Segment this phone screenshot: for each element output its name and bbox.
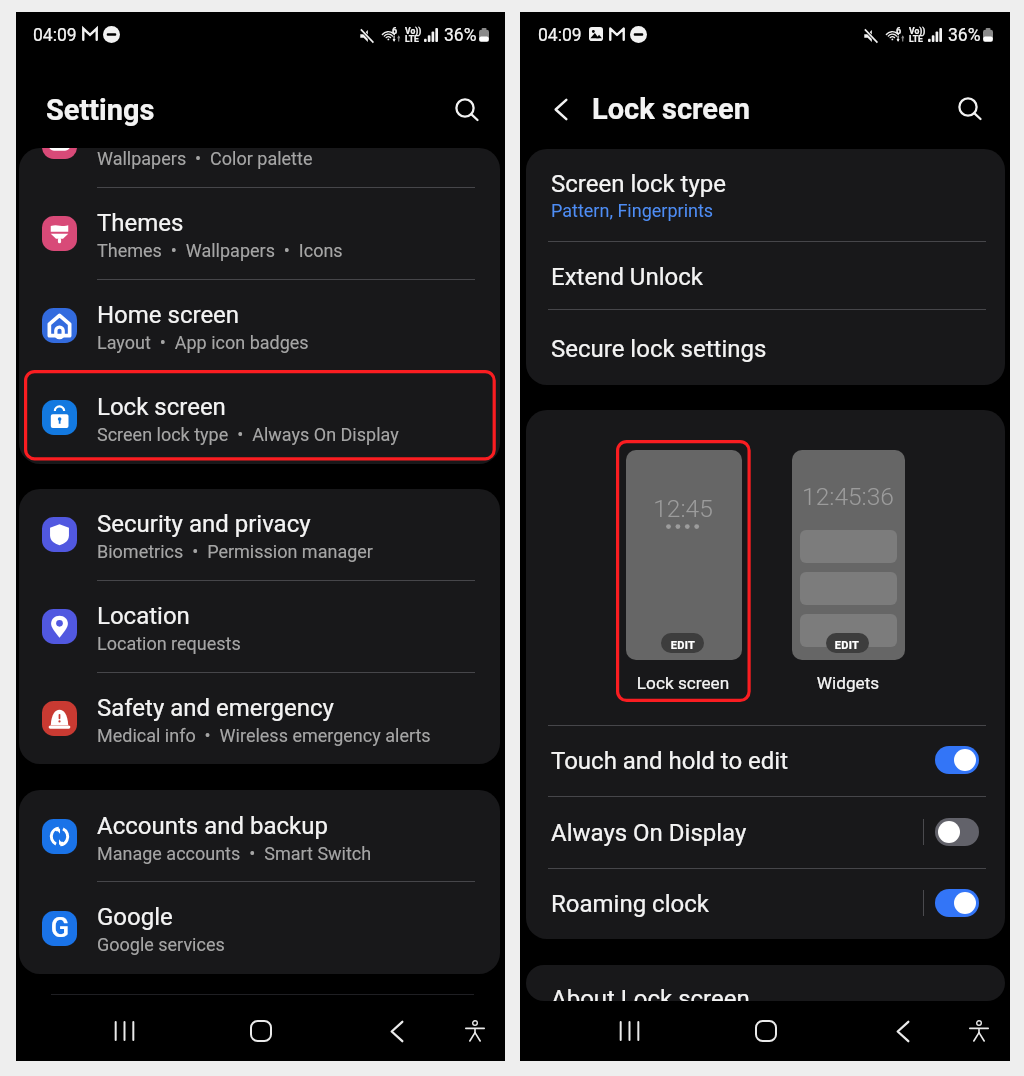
staticText: Medical info • Wireless emergency alerts	[97, 725, 431, 746]
staticText: 04:09	[538, 25, 582, 46]
staticText: 04:09	[33, 25, 77, 46]
staticText: 6	[392, 26, 398, 37]
staticText: Secure lock settings	[551, 335, 767, 363]
button[interactable]: Always On Display	[526, 797, 1005, 869]
button[interactable]: Lock screen preview	[626, 450, 742, 660]
button[interactable]: Lock screen	[19, 371, 500, 463]
button[interactable]: Accounts and backup	[19, 790, 500, 882]
staticText: Lock screen	[97, 393, 226, 421]
button[interactable]: Secure lock settings	[526, 310, 1005, 385]
staticText: EDIT	[817, 639, 877, 939]
staticText: Settings	[46, 93, 155, 127]
button[interactable]: Back	[384, 1017, 410, 1045]
staticText: LTE	[405, 34, 419, 44]
button[interactable]: Switch off	[935, 818, 979, 846]
button[interactable]: Extend Unlock	[526, 241, 1005, 309]
button[interactable]: Google	[19, 882, 500, 974]
staticText: 12:45	[613, 494, 753, 939]
staticText: Lock screen	[593, 673, 773, 939]
button[interactable]: Back	[890, 1017, 916, 1045]
button[interactable]: Home	[751, 1016, 781, 1046]
staticText: Location requests	[97, 633, 241, 654]
staticText: Location	[97, 602, 190, 630]
staticText: Themes • Wallpapers • Icons	[97, 240, 343, 261]
button[interactable]: Switch on	[935, 746, 979, 774]
staticText: Roaming clock	[551, 890, 709, 918]
staticText: 12:45:36	[768, 482, 928, 939]
button[interactable]: Edit widgets	[826, 633, 869, 653]
button[interactable]: Accessibility	[966, 1018, 992, 1044]
button[interactable]: Widgets preview	[792, 450, 905, 660]
button[interactable]: About Lock screen	[526, 965, 1005, 1001]
staticText: 36%	[948, 25, 981, 46]
button[interactable]: Touch and hold to edit	[526, 726, 1005, 797]
staticText: Screen lock type	[551, 170, 726, 198]
staticText: Screen lock type • Always On Display	[97, 424, 399, 445]
staticText: 6	[896, 26, 902, 37]
staticText: G	[38, 912, 82, 974]
staticText: 36%	[444, 25, 477, 46]
button[interactable]: Accessibility	[462, 1018, 488, 1044]
staticText: Manage accounts • Smart Switch	[97, 843, 372, 864]
staticText: About Lock screen	[551, 985, 750, 1001]
staticText: Biometrics • Permission manager	[97, 541, 373, 562]
staticText: Lock screen	[592, 92, 750, 126]
button[interactable]: Recent apps	[108, 1017, 140, 1045]
button[interactable]: Navigate up	[547, 95, 575, 123]
staticText: Wallpapers • Color palette	[97, 148, 313, 169]
button[interactable]: Security and privacy	[19, 489, 500, 581]
staticText: Accounts and backup	[97, 812, 328, 840]
staticText: EDIT	[653, 639, 713, 939]
button[interactable]: Wallpaper and style	[19, 148, 500, 188]
staticText: LTE	[909, 34, 923, 44]
staticText: Widgets	[758, 673, 938, 939]
staticText: Extend Unlock	[551, 263, 703, 291]
staticText: Vo))	[405, 26, 422, 36]
button[interactable]: Roaming clock	[526, 868, 1005, 939]
button[interactable]: Themes	[19, 188, 500, 280]
staticText: Home screen	[97, 301, 240, 329]
staticText: Google	[97, 903, 173, 931]
button[interactable]: Search	[948, 87, 988, 127]
staticText: Vo))	[909, 26, 926, 36]
staticText: Security and privacy	[97, 510, 311, 538]
button[interactable]: Safety and emergency	[19, 673, 500, 764]
staticText: Always On Display	[551, 819, 747, 847]
button[interactable]: Search	[445, 88, 485, 128]
staticText: Touch and hold to edit	[551, 747, 789, 775]
button[interactable]: Location	[19, 581, 500, 673]
button[interactable]: Screen lock type	[526, 149, 1005, 241]
button[interactable]: Home screen	[19, 280, 500, 372]
staticText: Pattern, Fingerprints	[551, 200, 714, 221]
button[interactable]: Switch on	[935, 889, 979, 917]
staticText: Themes	[97, 209, 184, 237]
button[interactable]: Edit lock screen	[661, 633, 704, 653]
button[interactable]: Recent apps	[613, 1017, 645, 1045]
staticText: Google services	[97, 934, 225, 955]
staticText: Layout • App icon badges	[97, 332, 309, 353]
staticText: Safety and emergency	[97, 694, 334, 722]
button[interactable]: Home	[246, 1016, 276, 1046]
